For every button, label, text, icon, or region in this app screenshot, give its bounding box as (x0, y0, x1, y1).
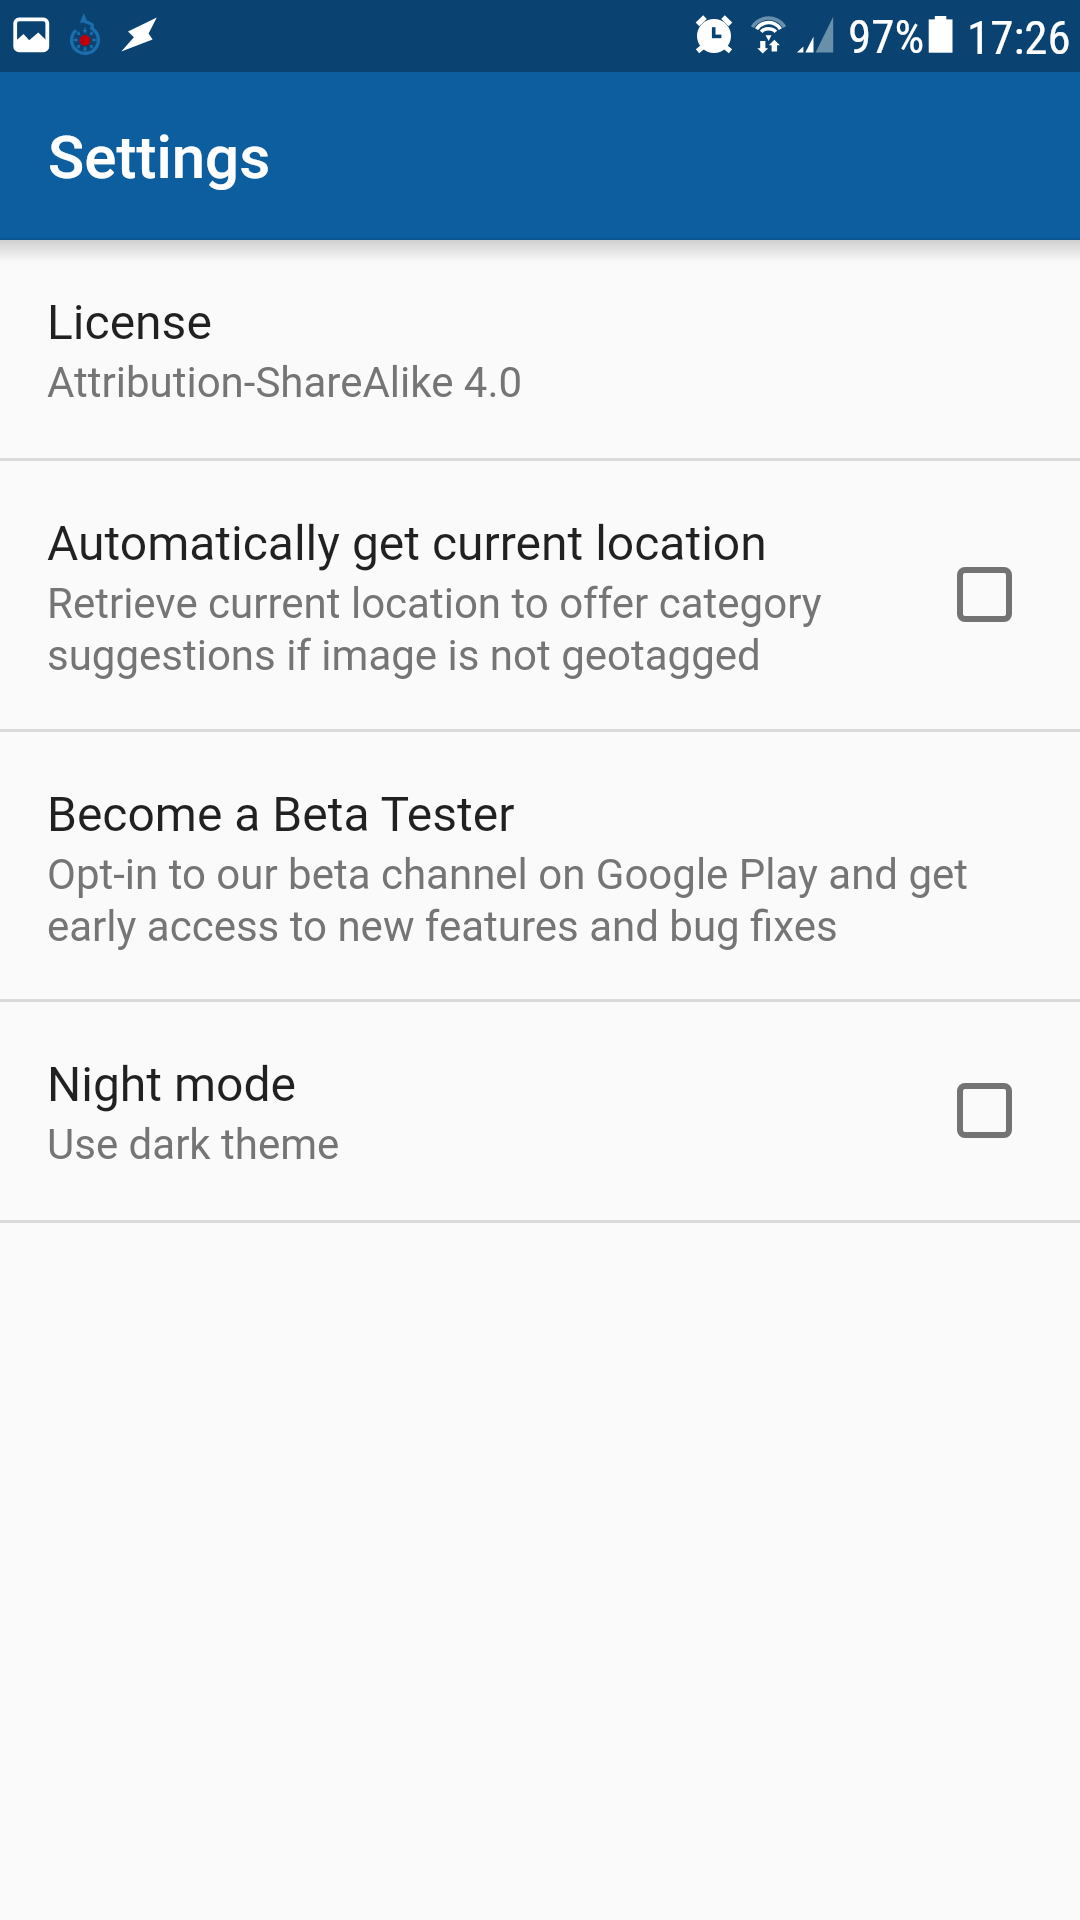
staticText: 97% (848, 9, 925, 64)
staticText: Automatically get current location (47, 515, 767, 571)
staticText: Use dark theme (47, 1120, 340, 1169)
staticText: License (47, 294, 212, 350)
staticText: Settings (48, 122, 271, 192)
staticText: Opt-in to our beta channel on Google Pla… (47, 850, 969, 951)
staticText: 17:26 (967, 10, 1071, 65)
button[interactable]: Night mode (0, 1002, 1080, 1220)
staticText: Become a Beta Tester (47, 786, 515, 842)
staticText: Retrieve current location to offer categ… (47, 579, 822, 680)
button[interactable]: License (0, 240, 1080, 458)
staticText: Night mode (47, 1056, 296, 1112)
button[interactable]: Become a Beta Tester (0, 732, 1080, 999)
staticText: Attribution-ShareAlike 4.0 (47, 358, 523, 407)
button[interactable]: Automatically get current location (0, 461, 1080, 729)
button[interactable]: Toggle Night mode (888, 1002, 1080, 1220)
button[interactable]: Toggle Automatically get current locatio… (888, 461, 1080, 729)
